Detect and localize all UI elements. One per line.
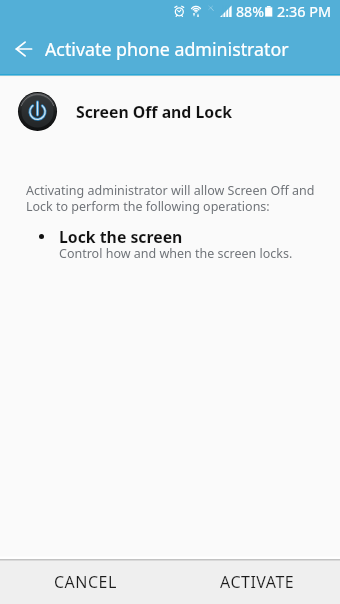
button[interactable]: Navigate up (1, 27, 45, 71)
staticText: Activate phone administrator (45, 37, 289, 61)
button[interactable]: CANCEL (0, 561, 170, 604)
staticText: Lock the screen (59, 226, 183, 248)
button[interactable]: ACTIVATE (170, 561, 340, 604)
staticText: ACTIVATE (220, 571, 295, 593)
staticText: Screen Off and Lock (76, 101, 233, 123)
staticText: Control how and when the screen locks. (59, 245, 293, 262)
staticText: 88% (236, 2, 265, 21)
staticText: Activating administrator will allow Scre… (26, 182, 318, 214)
staticText: 2:36 PM (277, 2, 332, 22)
staticText: CANCEL (54, 571, 117, 593)
